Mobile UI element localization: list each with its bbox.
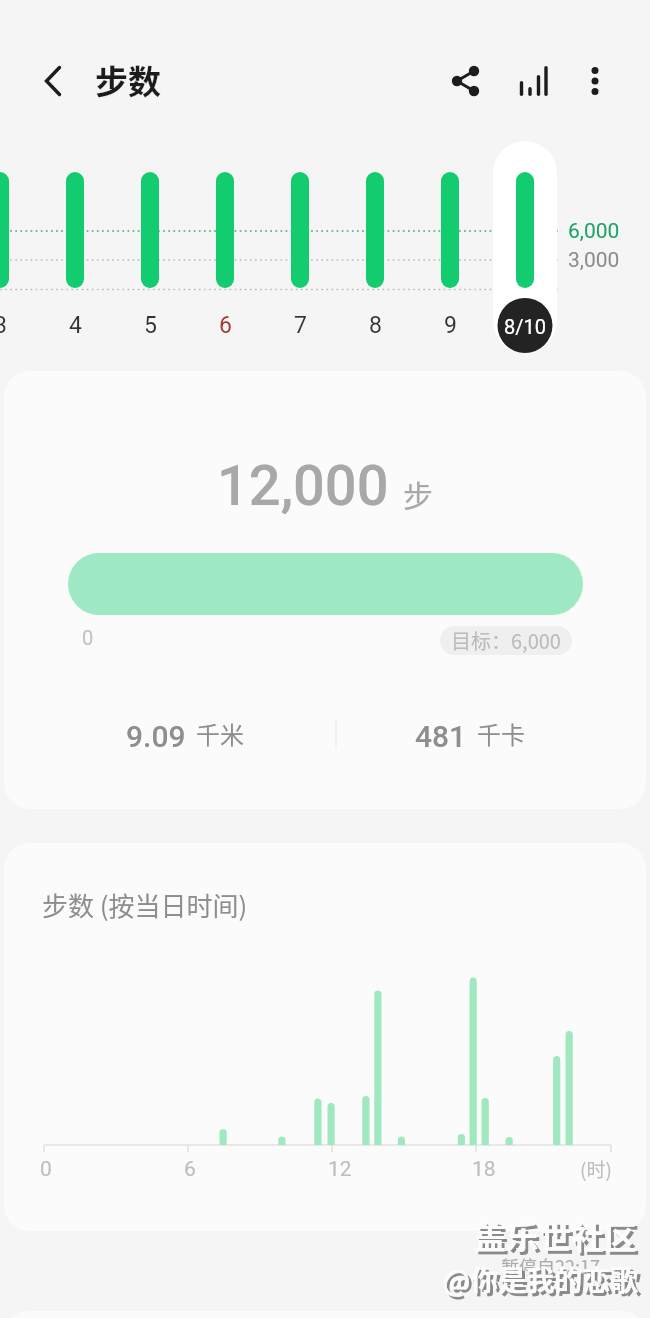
- staticText: 千卡: [477, 716, 525, 751]
- staticText: 步数 (按当日时间): [42, 886, 248, 924]
- staticText: 步数: [95, 56, 161, 104]
- staticText: @你是我的恋歌: [445, 1262, 642, 1303]
- staticText: 9.09: [126, 719, 186, 754]
- staticText: 3: [0, 312, 7, 339]
- staticText: 千米: [196, 716, 244, 751]
- staticText: 8/10: [504, 315, 546, 338]
- staticText: 盖乐世社区: [477, 1215, 641, 1261]
- staticText: 9: [444, 312, 457, 339]
- staticText: 暂停自22:17: [501, 1253, 600, 1279]
- button[interactable]: More options: [567, 53, 623, 109]
- staticText: (时): [580, 1155, 612, 1183]
- staticText: 6: [219, 312, 232, 339]
- staticText: 步: [403, 472, 433, 515]
- staticText: @你是我的恋歌: [442, 1259, 639, 1300]
- staticText: 4: [69, 312, 82, 339]
- staticText: 3,000: [568, 248, 620, 273]
- staticText: 481: [415, 719, 467, 754]
- staticText: 盖乐世社区: [474, 1212, 638, 1258]
- staticText: 12,000: [217, 453, 389, 519]
- staticText: 0: [40, 1157, 52, 1182]
- staticText: 0: [82, 626, 94, 649]
- staticText: 7: [294, 312, 307, 339]
- staticText: 6,000: [568, 219, 620, 244]
- button[interactable]: Back: [23, 48, 89, 114]
- button[interactable]: Share: [435, 53, 491, 109]
- staticText: 8: [369, 312, 382, 339]
- button[interactable]: Chart view: [505, 53, 561, 109]
- staticText: 18: [472, 1157, 496, 1182]
- staticText: 12: [328, 1157, 352, 1182]
- staticText: 5: [144, 312, 157, 339]
- staticText: 目标：6,000: [451, 626, 561, 655]
- staticText: 6: [184, 1157, 196, 1182]
